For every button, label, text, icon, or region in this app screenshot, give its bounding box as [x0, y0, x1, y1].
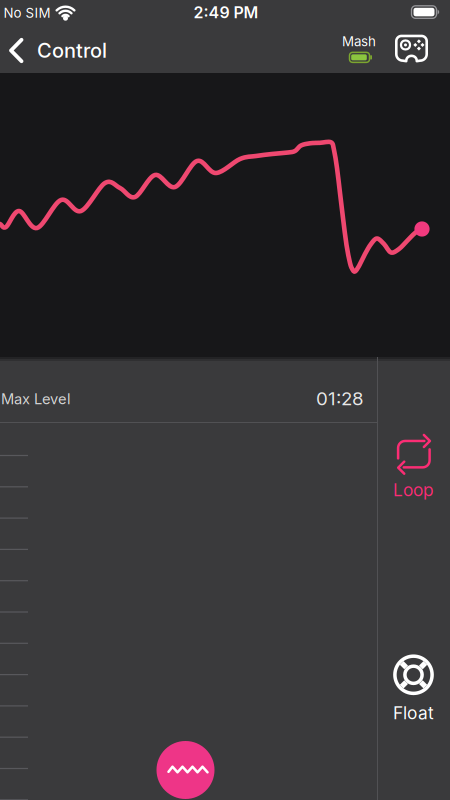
button[interactable]: Mash toy battery: [342, 34, 376, 62]
staticText: No SIM: [3, 5, 50, 21]
button[interactable]: Game controller: [395, 35, 427, 62]
staticText: Float: [393, 703, 434, 723]
button[interactable]: Wave pattern: [156, 741, 214, 799]
staticText: Loop: [393, 480, 434, 500]
staticText: Control: [37, 39, 107, 62]
button[interactable]: Loop: [393, 434, 434, 500]
staticText: Mash: [342, 34, 376, 49]
staticText: 2:49 PM: [193, 3, 258, 22]
staticText: 01:28: [316, 387, 364, 409]
staticText: Max Level: [1, 390, 71, 408]
button[interactable]: Float: [392, 654, 434, 723]
button[interactable]: Back: [9, 28, 107, 73]
